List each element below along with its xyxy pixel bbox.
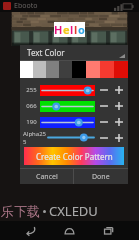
button[interactable] xyxy=(40,85,95,96)
button[interactable] xyxy=(47,132,95,143)
staticText: Done xyxy=(92,172,110,182)
button[interactable]: Increase xyxy=(113,116,125,128)
staticText: CXLEDU xyxy=(49,202,98,220)
button[interactable]: Home xyxy=(61,222,78,239)
button[interactable]: Decrease xyxy=(98,100,110,112)
staticText: Alpha255 xyxy=(23,130,47,145)
button[interactable]: Create Color Pattern xyxy=(24,147,124,165)
staticText: 190 xyxy=(23,118,40,126)
button[interactable]: Text Color xyxy=(20,45,128,60)
button[interactable]: Decrease xyxy=(98,132,110,144)
staticText: H xyxy=(54,22,63,37)
staticText: e xyxy=(63,22,70,37)
button[interactable]: Increase xyxy=(113,100,125,112)
staticText: 255 xyxy=(23,86,40,94)
button[interactable]: Cancel xyxy=(20,169,73,184)
button[interactable]: Decrease xyxy=(98,116,110,128)
staticText: l xyxy=(74,22,78,37)
button[interactable]: Increase xyxy=(113,132,125,144)
staticText: Text Color xyxy=(27,47,65,58)
button[interactable]: Back xyxy=(22,222,39,239)
staticText: o xyxy=(78,22,85,37)
button[interactable]: Recents xyxy=(100,222,117,239)
button[interactable]: Increase xyxy=(113,84,125,96)
staticText: Ebooto xyxy=(14,1,38,11)
staticText: Cancel xyxy=(36,172,58,182)
staticText: Create Color Pattern xyxy=(36,151,113,162)
staticText: l xyxy=(70,22,74,37)
button[interactable] xyxy=(40,101,95,112)
button[interactable]: Done xyxy=(74,169,128,184)
staticText: 乐下载 xyxy=(1,203,40,219)
button[interactable] xyxy=(40,117,95,128)
button[interactable]: Decrease xyxy=(98,84,110,96)
staticText: 066 xyxy=(23,102,40,110)
